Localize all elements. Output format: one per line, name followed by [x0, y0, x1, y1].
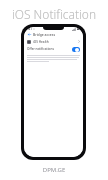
- button[interactable]: Back: [27, 32, 32, 37]
- staticText: Bridge access: [33, 32, 56, 37]
- staticText: 9:41: [26, 27, 32, 31]
- staticText: iOS Notification: [0, 6, 108, 22]
- staticText: DPM.GE: [0, 166, 108, 174]
- staticText: Offer notifications: [27, 47, 72, 51]
- staticText: iOS Health: [33, 40, 49, 44]
- button[interactable]: Offer notifications: [24, 45, 83, 53]
- button[interactable]: iOS Health: [24, 38, 83, 45]
